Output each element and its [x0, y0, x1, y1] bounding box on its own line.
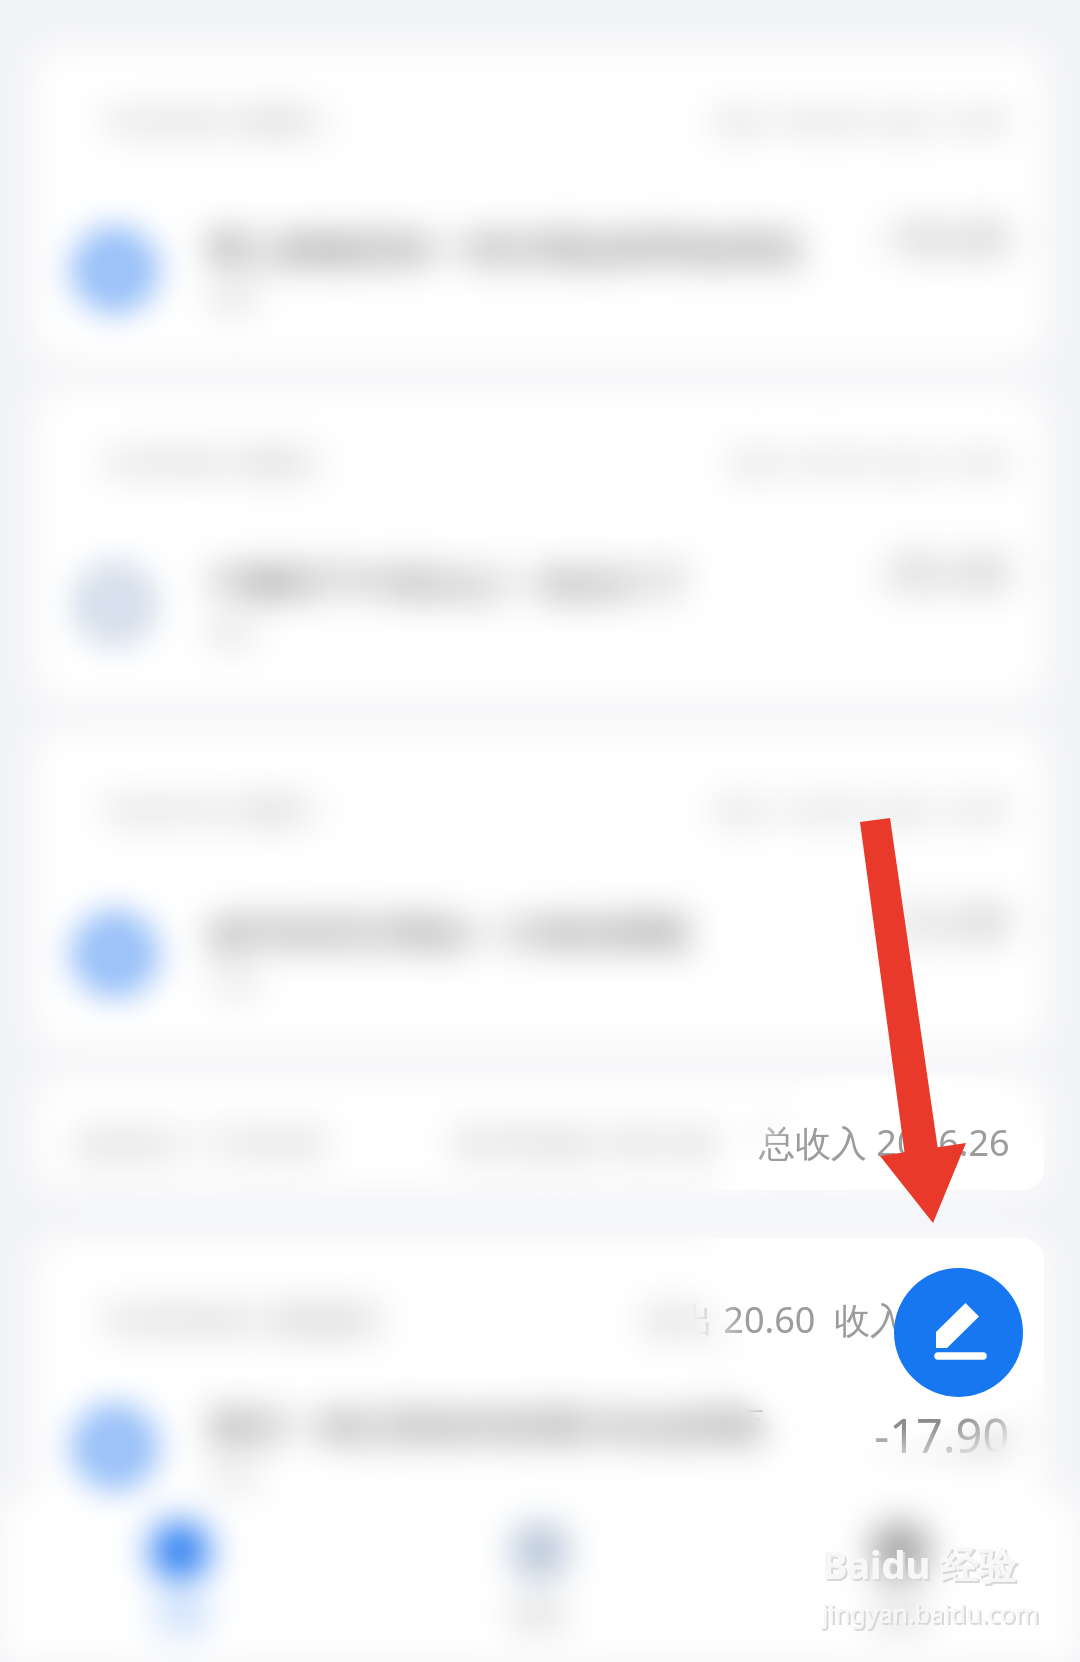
staticText: 10月07日 星期一 [98, 789, 332, 831]
staticText: 最后一条记录的内容显示在这里面 [209, 1403, 764, 1450]
staticText: 10月06日 星期日 [98, 1293, 385, 1345]
button[interactable]: 超市采买日用品一大堆东西呢 [36, 899, 1044, 1009]
button[interactable]: 记账 [0, 1500, 360, 1662]
staticText: 10月09日 星期三 [98, 100, 332, 142]
staticText: Baidu 经验 [824, 1540, 1018, 1592]
staticText: 午餐和下午茶点心一份合计了 [209, 560, 690, 607]
staticText: 支出 120.00 收入 0.00 [713, 790, 1008, 830]
staticText: -35.00 [874, 540, 1010, 604]
staticText: 网上购物买的一些日用品和零食类别 [209, 226, 801, 273]
button[interactable]: 午餐和下午茶点心一份合计了 [36, 549, 1044, 659]
staticText: jingyan.baidu.com [822, 1596, 1039, 1630]
staticText: 总收入 2046.26 [759, 1118, 1010, 1167]
staticText: 最后一条记录的内容显示在这里面 [209, 1403, 764, 1450]
staticText: 10月08日 星期二 [98, 441, 332, 483]
button[interactable]: 网上购物买的一些日用品和零食类别 [36, 215, 1044, 325]
staticText: 我的 [872, 1598, 928, 1633]
staticText: 10月08日 星期二 [98, 441, 332, 483]
staticText: -12.00 [874, 890, 1010, 954]
button[interactable]: 超市采买日用品一大堆东西呢 [36, 899, 1044, 1009]
button[interactable]: 我的 [720, 1500, 1080, 1662]
staticText: 支出 120.00 收入 0.00 [713, 790, 1008, 830]
staticText: -17.90 [874, 1403, 1010, 1467]
staticText: 支出 20.60 收入 17.90 [642, 1295, 1008, 1344]
button[interactable]: 网上购物买的一些日用品和零食类别 [36, 215, 1044, 325]
button[interactable]: 午餐和下午茶点心一份合计了 [36, 549, 1044, 659]
staticText: -18.00 [874, 206, 1010, 270]
button[interactable]: 图表 [360, 1500, 720, 1662]
staticText: 超市采买日用品一大堆东西呢 [209, 910, 690, 957]
button[interactable]: 我的 [720, 1500, 1080, 1662]
staticText: 总收入 2046.26 [759, 1118, 1010, 1167]
staticText: -17.90 [874, 1403, 1010, 1467]
button[interactable]: 最后一条记录的内容显示在这里面 [36, 1392, 1044, 1502]
button[interactable]: 图表 [360, 1500, 720, 1662]
staticText: 总支出 1120.60 [74, 1118, 325, 1167]
staticText: 超市采买日用品一大堆东西呢 [209, 910, 690, 957]
staticText: 支出 20.60 收入 17.90 [642, 1295, 1008, 1344]
staticText: 我的 [872, 1598, 928, 1633]
staticText: jingyan.baidu.com [824, 1598, 1041, 1632]
staticText: 记账 [152, 1598, 208, 1633]
staticText: 10月07日 星期一 [98, 789, 332, 831]
staticText: 10月06日 星期日 [98, 1293, 385, 1345]
staticText: -12.00 [874, 890, 1010, 954]
staticText: -35.00 [874, 540, 1010, 604]
staticText: 午餐和下午茶点心一份合计了 [209, 560, 690, 607]
staticText: Baidu 经验 [822, 1538, 1016, 1590]
button[interactable]: 记一笔 [894, 1268, 1023, 1397]
staticText: 记账 [152, 1598, 208, 1633]
staticText: -18.00 [874, 206, 1010, 270]
staticText: 网上购物买的一些日用品和零食类别 [209, 226, 801, 273]
staticText: 10月09日 星期三 [98, 100, 332, 142]
staticText: 总支出 1120.60 [74, 1118, 325, 1167]
button[interactable]: 最后一条记录的内容显示在这里面 [36, 1392, 1044, 1502]
button[interactable]: 记账 [0, 1500, 360, 1662]
